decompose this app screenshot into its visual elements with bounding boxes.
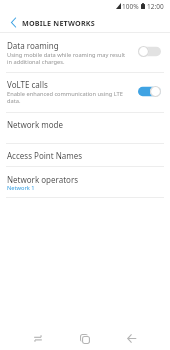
button[interactable] [0, 167, 170, 197]
staticText: Data roaming [7, 40, 59, 51]
button[interactable]: Home [61, 328, 108, 349]
staticText: Network 1 [7, 184, 35, 192]
button[interactable]: Navigate up [3, 12, 23, 32]
button[interactable] [0, 143, 170, 167]
staticText: MOBILE NETWORKS [22, 18, 95, 28]
button[interactable] [0, 32, 170, 71]
staticText: Enable enhanced communication using LTE … [7, 90, 129, 105]
staticText: VoLTE calls [7, 79, 48, 90]
button[interactable]: On [138, 86, 161, 97]
staticText: Network mode [7, 119, 64, 130]
staticText: Network operators [7, 174, 79, 185]
staticText: Access Point Names [7, 150, 83, 161]
staticText: Using mobile data while roaming may resu… [7, 51, 129, 66]
button[interactable] [0, 71, 170, 110]
staticText: 12:00 [147, 2, 164, 11]
button[interactable]: Off [138, 46, 161, 57]
staticText: 100% [122, 2, 139, 11]
button[interactable]: Recent apps [14, 328, 61, 349]
button[interactable]: Back [108, 328, 155, 349]
button[interactable] [0, 112, 170, 136]
